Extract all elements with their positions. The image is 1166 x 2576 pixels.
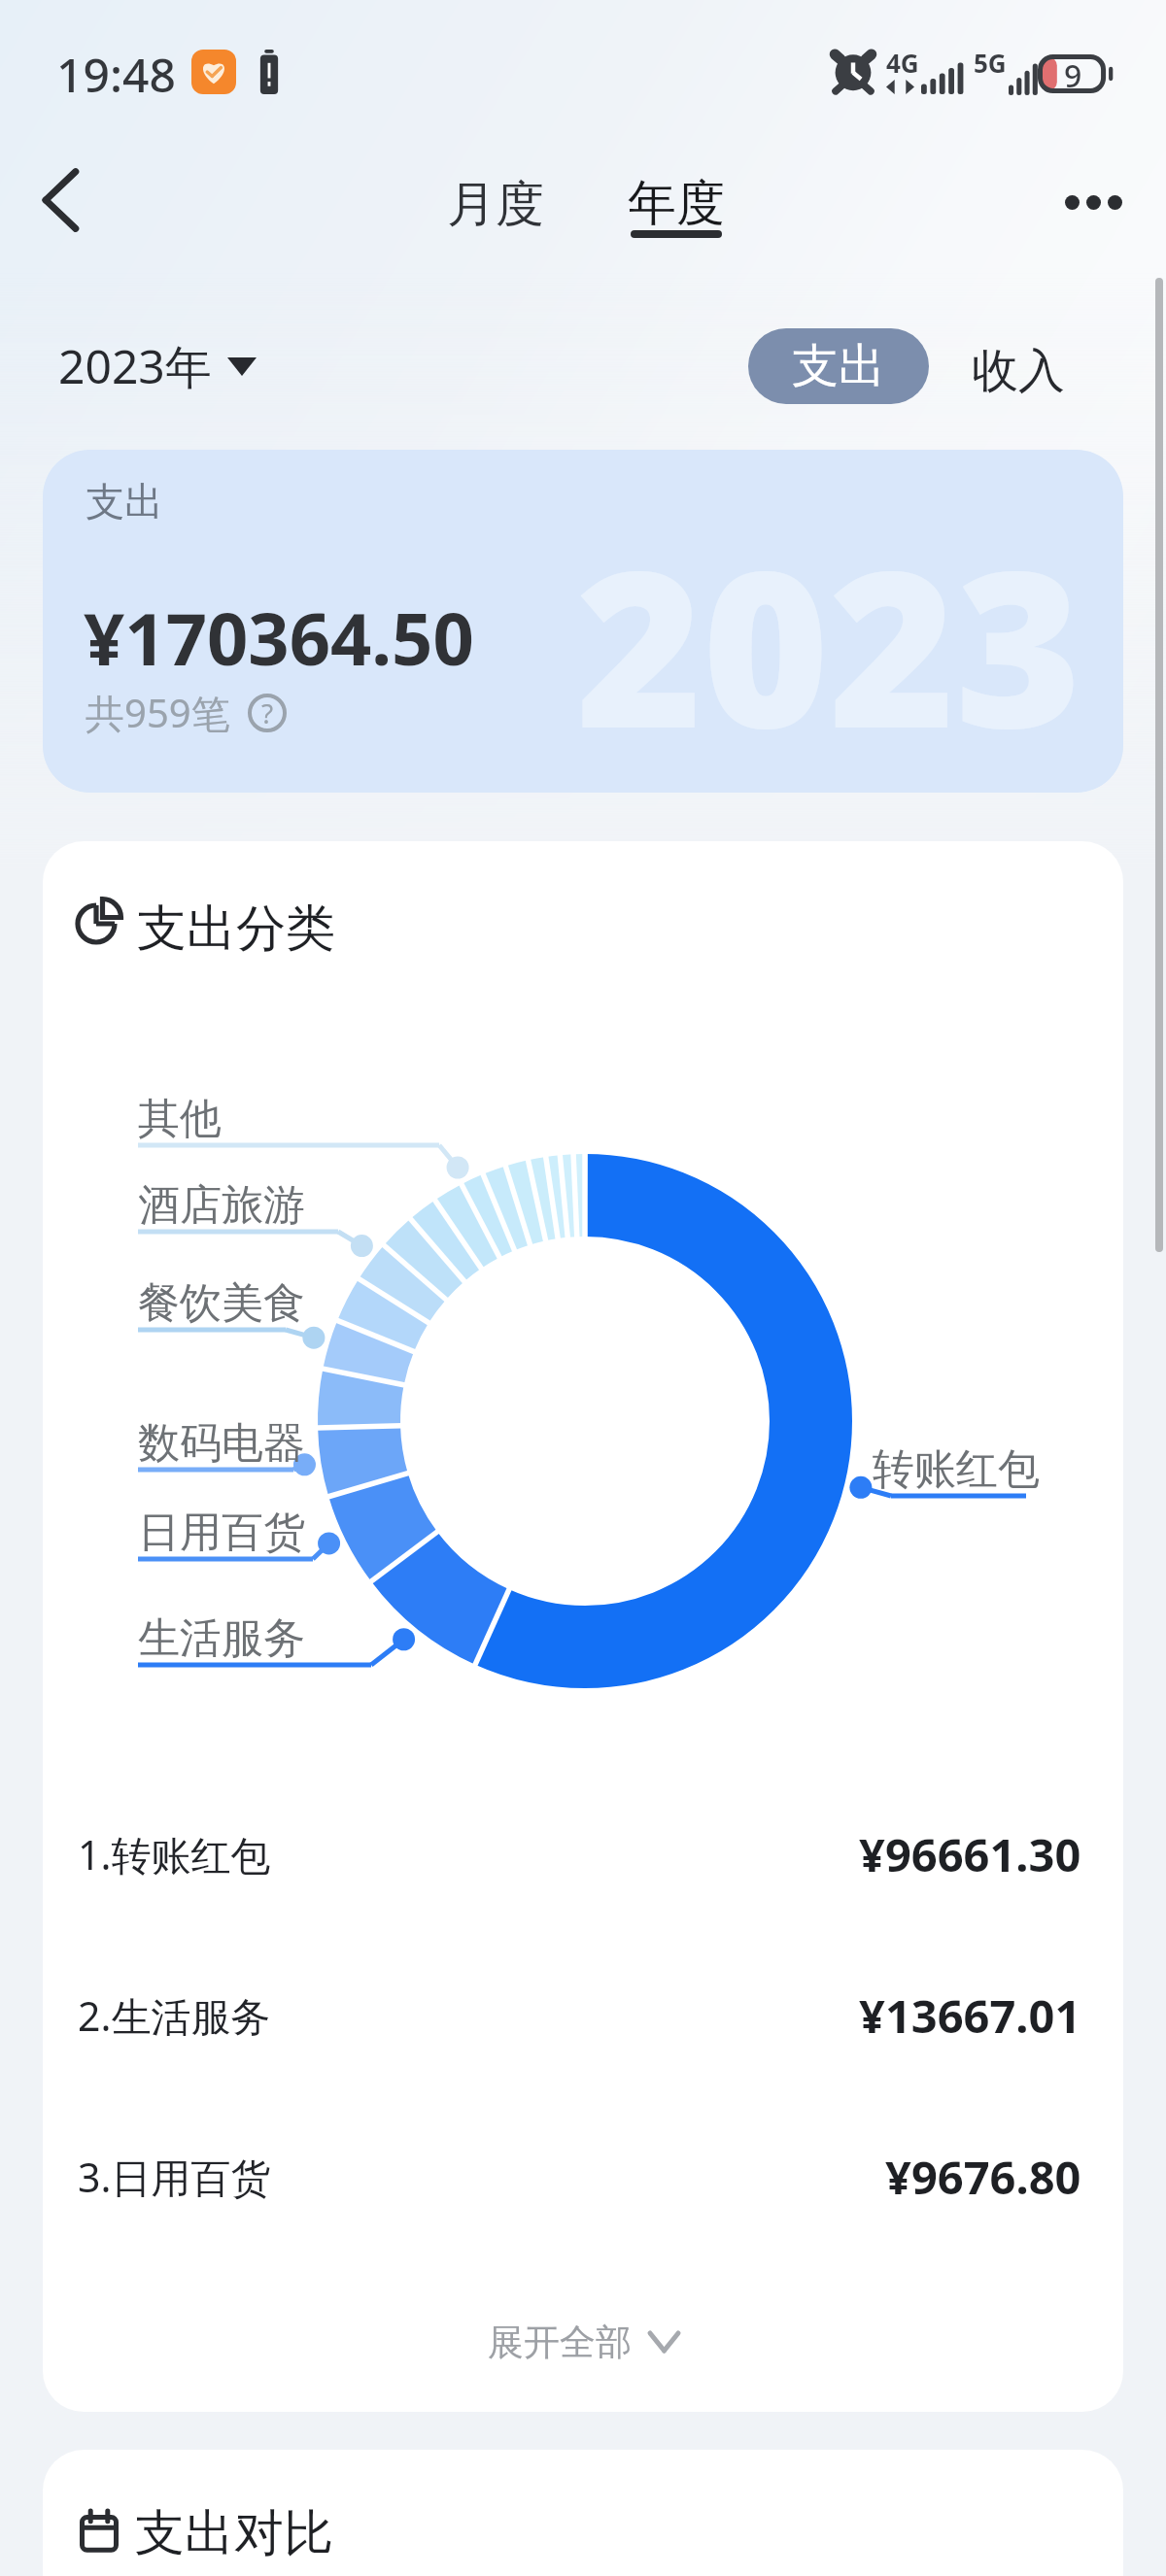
staticText: ? — [261, 695, 274, 731]
button[interactable]: More options — [1050, 159, 1136, 245]
staticText: ¥13667.01 — [859, 1984, 1081, 2047]
button[interactable]: 3.日用百货 — [43, 2123, 1123, 2230]
staticText: 转账红包 — [873, 1443, 1040, 1496]
staticText: 9 — [1064, 54, 1082, 93]
staticText: 2023年 — [58, 334, 212, 398]
staticText: 共959笔 — [86, 686, 230, 739]
staticText: 月度 — [447, 174, 544, 235]
button[interactable]: Back — [17, 157, 103, 243]
button[interactable]: 展开全部 — [43, 2298, 1123, 2386]
staticText: 4G — [886, 46, 919, 80]
button[interactable]: 1.转账红包 — [43, 1801, 1123, 1908]
staticText: 餐饮美食 — [138, 1277, 305, 1330]
button[interactable]: 收入 — [960, 333, 1077, 409]
button[interactable]: 2023年 — [58, 328, 257, 404]
staticText: 展开全部 — [488, 2320, 632, 2365]
button[interactable]: Help — [246, 692, 289, 734]
staticText: ¥9676.80 — [885, 2146, 1081, 2208]
button[interactable]: 支出 — [748, 328, 929, 404]
staticText: 支出 — [86, 477, 163, 525]
staticText: 年度 — [628, 173, 725, 234]
staticText: 酒店旅游 — [138, 1179, 305, 1232]
staticText: 支出分类 — [137, 898, 335, 960]
staticText: 2023 — [576, 497, 1082, 791]
staticText: ¥96661.30 — [859, 1823, 1081, 1885]
staticText: 日用百货 — [138, 1507, 305, 1559]
staticText: ¥170364.50 — [84, 589, 474, 687]
staticText: 支出对比 — [135, 2502, 333, 2564]
staticText: 其他 — [138, 1093, 222, 1145]
staticText: 生活服务 — [138, 1612, 305, 1665]
button[interactable]: 2023 — [43, 450, 1123, 793]
staticText: 19:48 — [56, 43, 176, 101]
staticText: 收入 — [972, 342, 1065, 400]
staticText: 数码电器 — [138, 1417, 305, 1470]
button[interactable]: 月度 — [428, 159, 564, 249]
staticText: 3.日用百货 — [78, 2150, 271, 2204]
staticText: 2.生活服务 — [78, 1988, 271, 2043]
staticText: 1.转账红包 — [78, 1827, 271, 1881]
button[interactable]: 年度 — [608, 171, 744, 260]
staticText: 5G — [974, 46, 1007, 80]
button[interactable]: 2.生活服务 — [43, 1962, 1123, 2069]
staticText: 支出 — [792, 337, 885, 395]
